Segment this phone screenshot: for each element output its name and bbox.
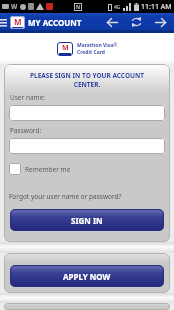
button[interactable] bbox=[9, 138, 165, 154]
staticText: M bbox=[14, 16, 22, 27]
button[interactable]: APPLY NOW bbox=[10, 265, 164, 287]
staticText: CENTER. bbox=[4, 80, 170, 89]
button[interactable] bbox=[155, 18, 166, 27]
staticText: User name: bbox=[10, 93, 46, 102]
staticText: Credit Card bbox=[77, 49, 105, 56]
staticText: W bbox=[11, 2, 18, 11]
staticText: 11:11 AM bbox=[141, 2, 172, 12]
button[interactable] bbox=[131, 17, 142, 27]
button[interactable] bbox=[9, 105, 165, 121]
button[interactable] bbox=[0, 18, 8, 27]
staticText: M bbox=[62, 43, 69, 53]
staticText: MY ACCOUNT bbox=[28, 17, 82, 28]
staticText: SIGN IN bbox=[71, 215, 103, 226]
staticText: 4G bbox=[114, 4, 121, 11]
button[interactable] bbox=[107, 18, 118, 27]
staticText: PLEASE SIGN IN TO YOUR ACCOUNT bbox=[4, 71, 170, 80]
button[interactable]: Forgot your user name or password? bbox=[9, 192, 122, 201]
button[interactable]: SIGN IN bbox=[10, 209, 164, 231]
staticText: Remember me bbox=[25, 165, 71, 174]
staticText: APPLY NOW bbox=[63, 271, 111, 282]
staticText: Password: bbox=[10, 126, 42, 135]
button[interactable]: Remember me bbox=[9, 163, 71, 175]
staticText: Marathon Visa® bbox=[77, 42, 118, 49]
staticText: N bbox=[76, 4, 81, 11]
